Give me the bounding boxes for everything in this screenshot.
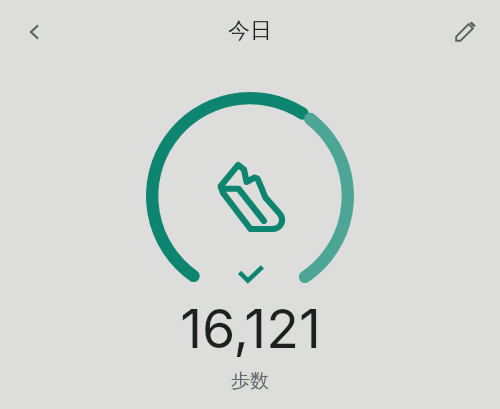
button[interactable]: Edit [443, 10, 487, 54]
staticText: 16,121 [180, 296, 321, 361]
staticText: 今日 [228, 17, 272, 45]
button[interactable]: Back [13, 10, 57, 54]
staticText: 歩数 [231, 369, 269, 393]
